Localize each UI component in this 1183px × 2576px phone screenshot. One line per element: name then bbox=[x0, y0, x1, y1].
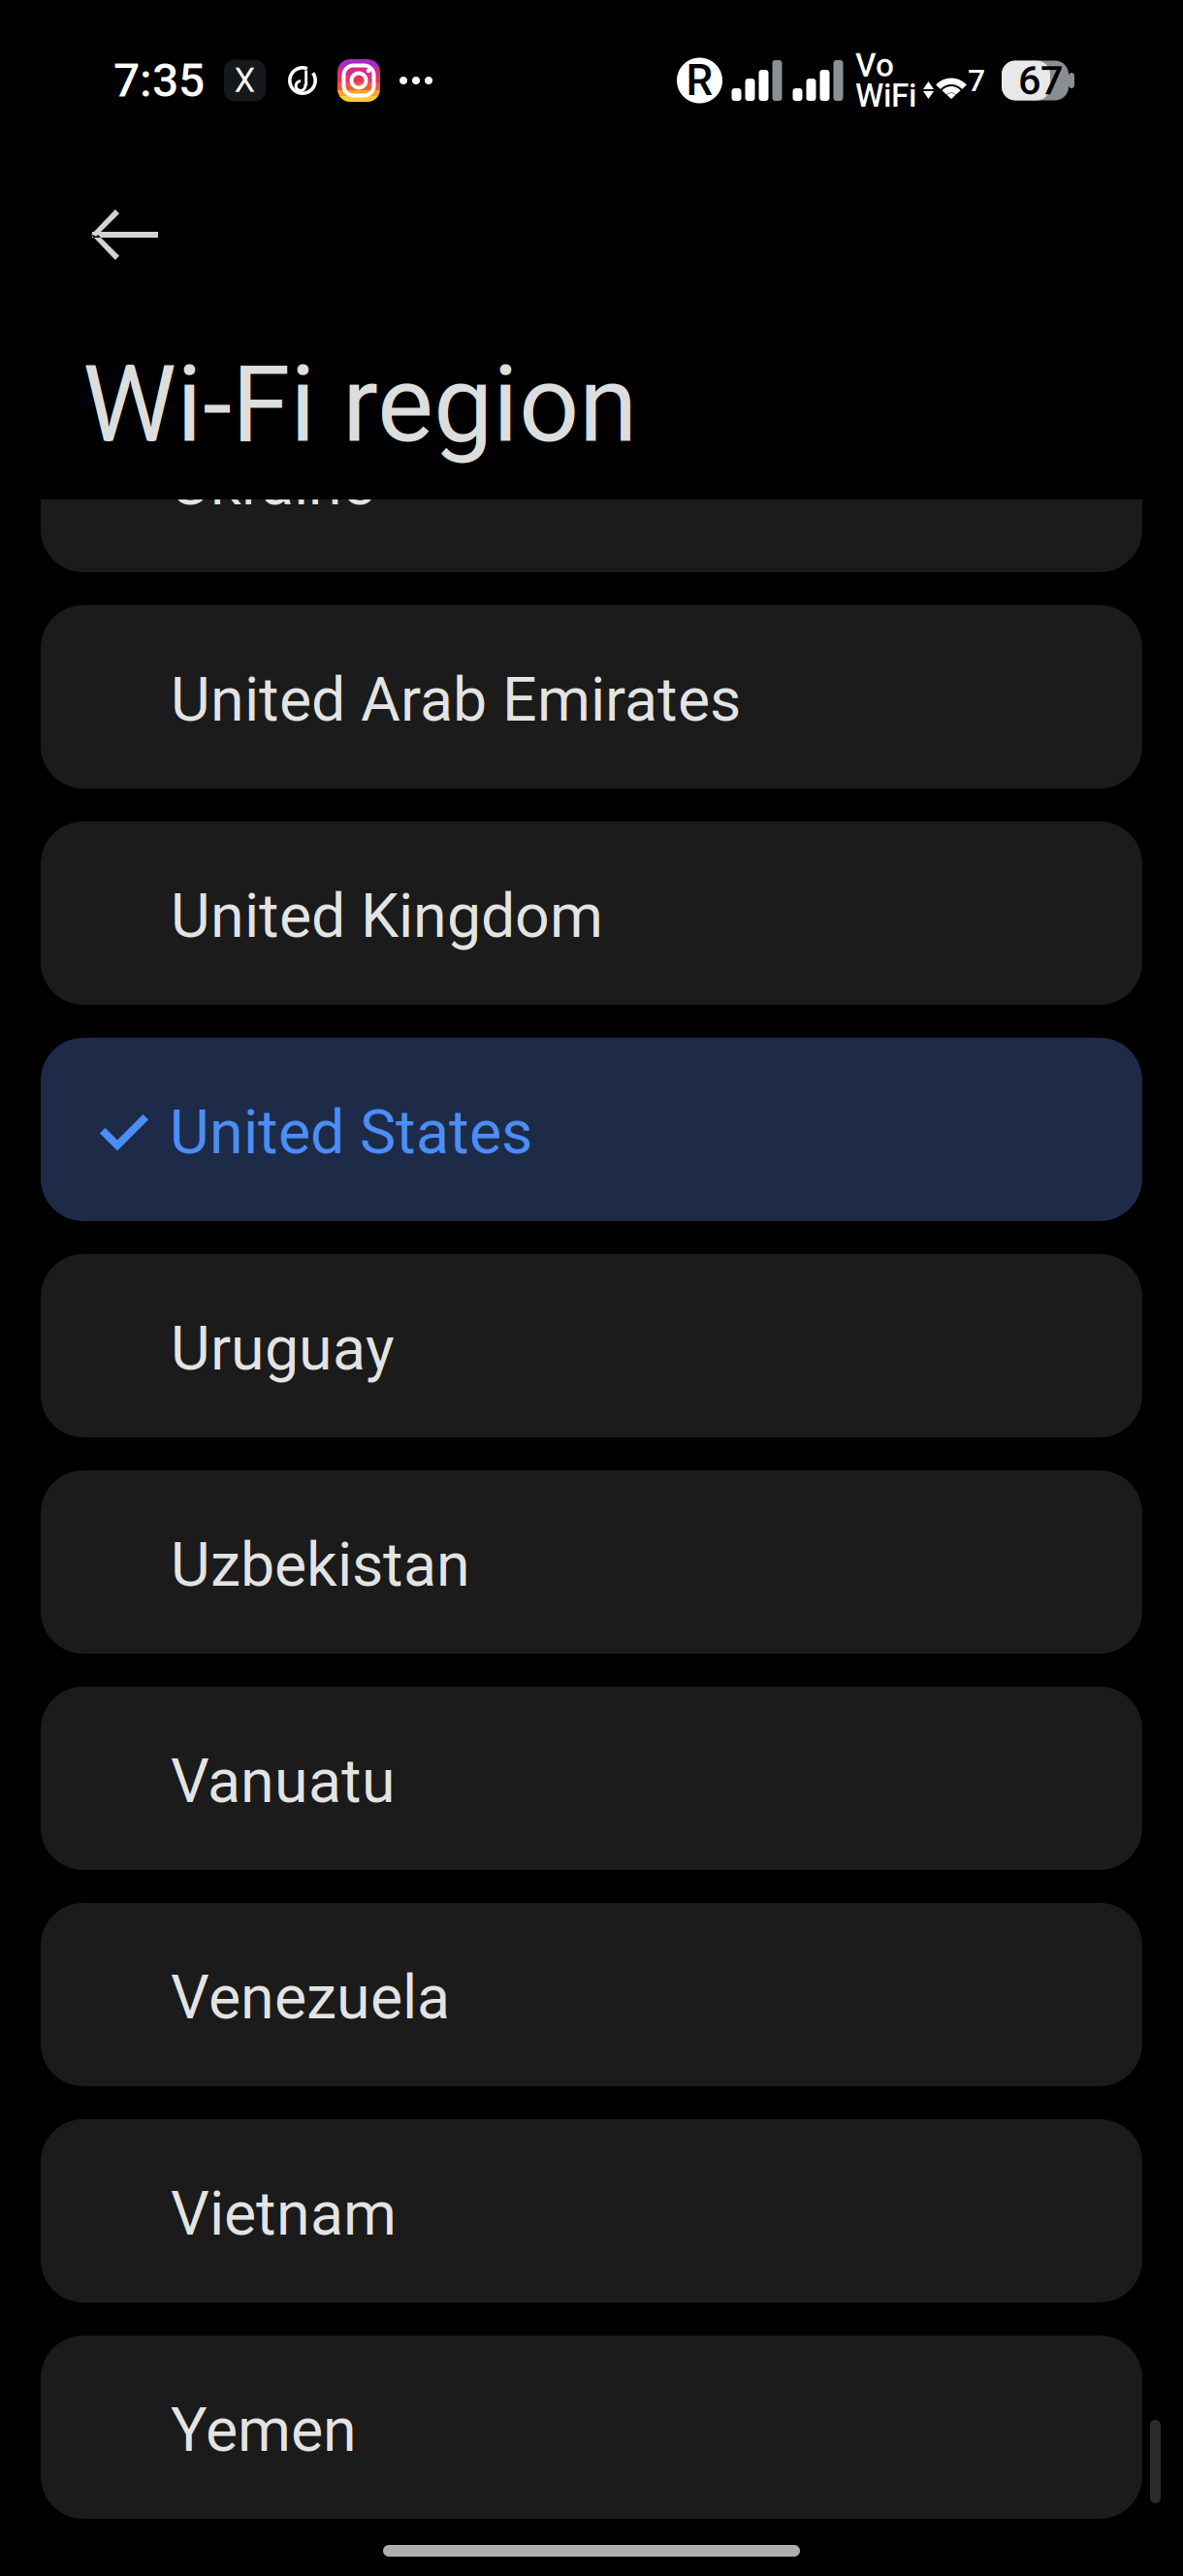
staticText: Uruguay bbox=[171, 1313, 395, 1384]
button[interactable]: Ukraine bbox=[41, 389, 1142, 572]
staticText: Vanuatu bbox=[171, 1746, 396, 1817]
staticText: Vietnam bbox=[171, 2178, 397, 2249]
staticText: X bbox=[234, 61, 256, 100]
staticText: United Arab Emirates bbox=[171, 664, 741, 735]
staticText: 7:35 bbox=[113, 53, 205, 108]
button[interactable]: United Arab Emirates bbox=[41, 605, 1142, 789]
staticText: WiFi bbox=[855, 77, 916, 115]
staticText: 7 bbox=[968, 62, 985, 99]
button[interactable]: Venezuela bbox=[41, 1903, 1142, 2086]
button[interactable]: Vietnam bbox=[41, 2119, 1142, 2302]
staticText: R bbox=[686, 55, 713, 106]
button[interactable]: United States bbox=[41, 1038, 1142, 1221]
staticText: 67 bbox=[1018, 57, 1063, 104]
button[interactable]: Uzbekistan bbox=[41, 1470, 1142, 1654]
button[interactable]: Vanuatu bbox=[41, 1687, 1142, 1870]
staticText: Vo bbox=[855, 46, 894, 84]
button[interactable]: Yemen bbox=[41, 2335, 1142, 2519]
staticText: Ukraine bbox=[171, 448, 374, 519]
button[interactable]: Uruguay bbox=[41, 1254, 1142, 1437]
staticText: Uzbekistan bbox=[171, 1529, 470, 1600]
button[interactable]: Back bbox=[56, 167, 192, 303]
staticText: United States bbox=[170, 1097, 532, 1168]
staticText: Yemen bbox=[171, 2394, 357, 2466]
button[interactable]: United Kingdom bbox=[41, 821, 1142, 1005]
staticText: United Kingdom bbox=[171, 880, 603, 952]
staticText: Venezuela bbox=[171, 1962, 450, 2033]
staticText: Wi-Fi region bbox=[82, 342, 637, 467]
